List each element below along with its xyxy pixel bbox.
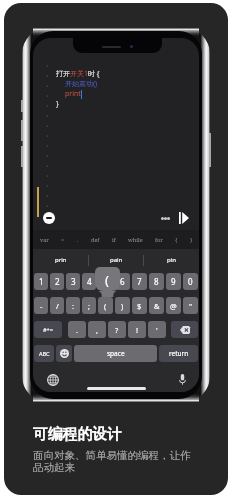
button[interactable]: ABC (34, 345, 54, 362)
button[interactable]: / (50, 297, 64, 314)
staticText: : (72, 301, 75, 311)
staticText: 4 (87, 276, 92, 287)
button[interactable]: 6 (115, 273, 130, 290)
button[interactable]: , (88, 321, 106, 338)
button[interactable]: $ (132, 297, 147, 314)
staticText: 8 (154, 276, 159, 287)
button[interactable]: for (153, 236, 165, 243)
staticText: & (154, 301, 160, 311)
button[interactable]: if (110, 236, 118, 243)
button[interactable]: & (149, 297, 164, 314)
button[interactable]: { (173, 236, 180, 243)
staticText: 7 (137, 276, 142, 287)
staticText: - (40, 301, 43, 311)
button[interactable]: ? (108, 321, 126, 338)
staticText: 1 (39, 276, 44, 287)
staticText: { (175, 236, 178, 243)
staticText: def (91, 236, 100, 243)
button[interactable]: Backspace (171, 321, 198, 338)
staticText: if (112, 236, 116, 243)
staticText: @ (170, 301, 177, 311)
button[interactable]: 1 (34, 273, 48, 290)
staticText: / (56, 301, 59, 311)
button[interactable]: prin (33, 249, 89, 271)
staticText: 3 (71, 276, 76, 287)
staticText: ) (121, 301, 124, 311)
button[interactable]: #+= (34, 321, 62, 338)
staticText: ? (115, 325, 119, 335)
button[interactable]: var (38, 236, 51, 243)
staticText: 0 (188, 276, 193, 287)
staticText: . (77, 236, 79, 243)
staticText: $ (137, 301, 142, 311)
button[interactable]: pin (144, 249, 199, 271)
button[interactable]: return (159, 345, 198, 362)
button[interactable]: space (74, 345, 157, 362)
staticText: 2 (55, 276, 60, 287)
button[interactable]: 9 (166, 273, 181, 290)
button[interactable]: 4 (82, 273, 96, 290)
button[interactable]: - (34, 297, 48, 314)
staticText: 可编程的设计 (33, 425, 122, 444)
button[interactable]: Run (176, 209, 192, 227)
staticText: 面向对象、简单易懂的编程，让作 品动起来 (33, 449, 191, 475)
button[interactable]: while (126, 236, 145, 243)
button[interactable]: . (68, 321, 86, 338)
button[interactable]: 3 (66, 273, 80, 290)
button[interactable]: = (59, 236, 67, 243)
button[interactable]: 5 (98, 273, 113, 290)
staticText: = (61, 236, 65, 243)
staticText: #+= (43, 326, 53, 333)
staticText: pin (167, 256, 176, 264)
button[interactable]: 8 (149, 273, 164, 290)
button[interactable]: ) (115, 297, 130, 314)
button[interactable]: Remove block (43, 212, 55, 224)
staticText: ' (156, 325, 158, 335)
staticText: } (190, 236, 193, 243)
button[interactable]: ! (128, 321, 146, 338)
button[interactable]: ( (98, 297, 113, 314)
staticText: space (107, 349, 125, 358)
staticText: ! (136, 325, 139, 335)
button[interactable]: Dictation (174, 371, 191, 388)
staticText: 打开开关1时 { (56, 69, 100, 79)
button[interactable]: : (66, 297, 80, 314)
button[interactable]: ; (82, 297, 96, 314)
staticText: ; (88, 301, 91, 311)
button[interactable]: } (188, 236, 195, 243)
staticText: prin (55, 256, 67, 264)
staticText: 9 (171, 276, 176, 287)
staticText: 开始震动() (65, 79, 98, 89)
button[interactable]: def (89, 236, 102, 243)
button[interactable]: 7 (132, 273, 147, 290)
staticText: " (189, 301, 193, 311)
staticText: 6 (120, 276, 125, 287)
button[interactable]: ' (148, 321, 166, 338)
staticText: , (96, 325, 99, 335)
staticText: ABC (39, 350, 50, 357)
staticText: ( (104, 301, 107, 311)
staticText: } (56, 99, 59, 109)
staticText: print (65, 89, 81, 99)
staticText: var (40, 236, 49, 243)
staticText: while (128, 236, 143, 243)
button[interactable]: 2 (50, 273, 64, 290)
staticText: return (169, 349, 189, 358)
staticText: . (76, 325, 79, 335)
button[interactable]: More options (155, 210, 175, 226)
button[interactable]: " (183, 297, 198, 314)
button[interactable]: Change keyboard (44, 371, 61, 388)
button[interactable]: . (75, 236, 81, 243)
staticText: pain (110, 256, 123, 264)
staticText: for (155, 236, 163, 243)
staticText: 5 (103, 276, 108, 287)
button[interactable]: 0 (183, 273, 198, 290)
staticText: ( (105, 271, 109, 289)
button[interactable]: Emoji (56, 345, 72, 362)
button[interactable]: pain (89, 249, 144, 271)
button[interactable]: @ (166, 297, 181, 314)
